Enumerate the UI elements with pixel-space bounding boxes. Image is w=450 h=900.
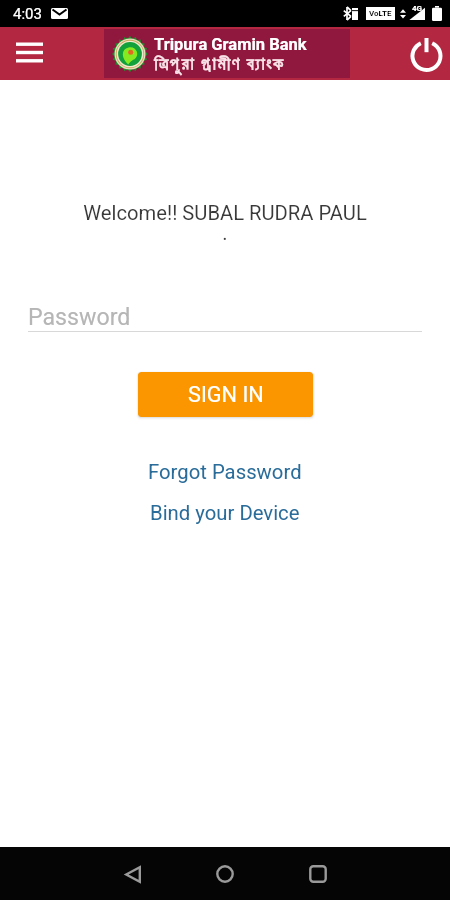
- button[interactable]: Open navigation menu: [5, 29, 54, 78]
- button[interactable]: Logout: [404, 32, 448, 76]
- button[interactable]: Back: [109, 850, 157, 898]
- button[interactable]: Home: [201, 850, 249, 898]
- staticText: 4G: [412, 4, 423, 13]
- staticText: 4:03: [13, 5, 42, 23]
- staticText: Bind your Device: [150, 501, 300, 525]
- button[interactable]: Recent apps: [294, 850, 342, 898]
- button[interactable]: SIGN IN: [138, 372, 313, 417]
- staticText: SIGN IN: [188, 382, 264, 407]
- staticText: VoLTE: [369, 9, 392, 18]
- staticText: ত্রিপুরা গ্রামীণ ব্যাংক: [154, 54, 285, 75]
- button[interactable]: Bind your Device: [134, 497, 316, 529]
- button[interactable]: Forgot Password: [132, 456, 318, 488]
- staticText: Tripura Gramin Bank: [154, 35, 307, 54]
- staticText: Password: [28, 303, 131, 330]
- staticText: Forgot Password: [148, 460, 302, 484]
- staticText: Welcome!! SUBAL RUDRA PAUL .: [0, 201, 450, 245]
